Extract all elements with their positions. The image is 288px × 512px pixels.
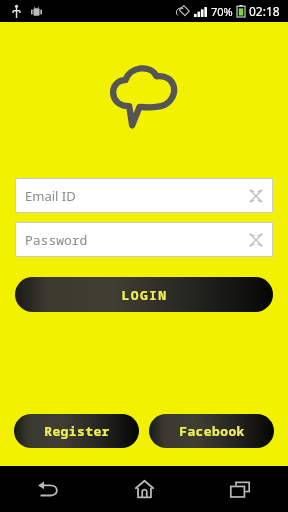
button[interactable]: Email ID bbox=[15, 178, 273, 213]
staticText: Facebook bbox=[179, 422, 245, 440]
staticText: Register bbox=[44, 422, 110, 440]
button[interactable]: Register bbox=[14, 414, 139, 448]
button[interactable]: Clear Password bbox=[248, 232, 264, 248]
staticText: 70% bbox=[211, 4, 233, 19]
button[interactable]: Home bbox=[96, 466, 192, 512]
button[interactable]: LOGIN bbox=[15, 277, 273, 312]
button[interactable]: Clear Email ID bbox=[248, 188, 264, 204]
staticText: 02:18 bbox=[249, 3, 280, 19]
button[interactable]: Recent apps bbox=[192, 466, 288, 512]
staticText: Password bbox=[25, 231, 88, 249]
staticText: LOGIN bbox=[121, 286, 168, 304]
button[interactable]: Back bbox=[0, 466, 96, 512]
staticText: Email ID bbox=[25, 187, 76, 205]
button[interactable]: Password bbox=[15, 222, 273, 257]
button[interactable]: Facebook bbox=[149, 414, 274, 448]
